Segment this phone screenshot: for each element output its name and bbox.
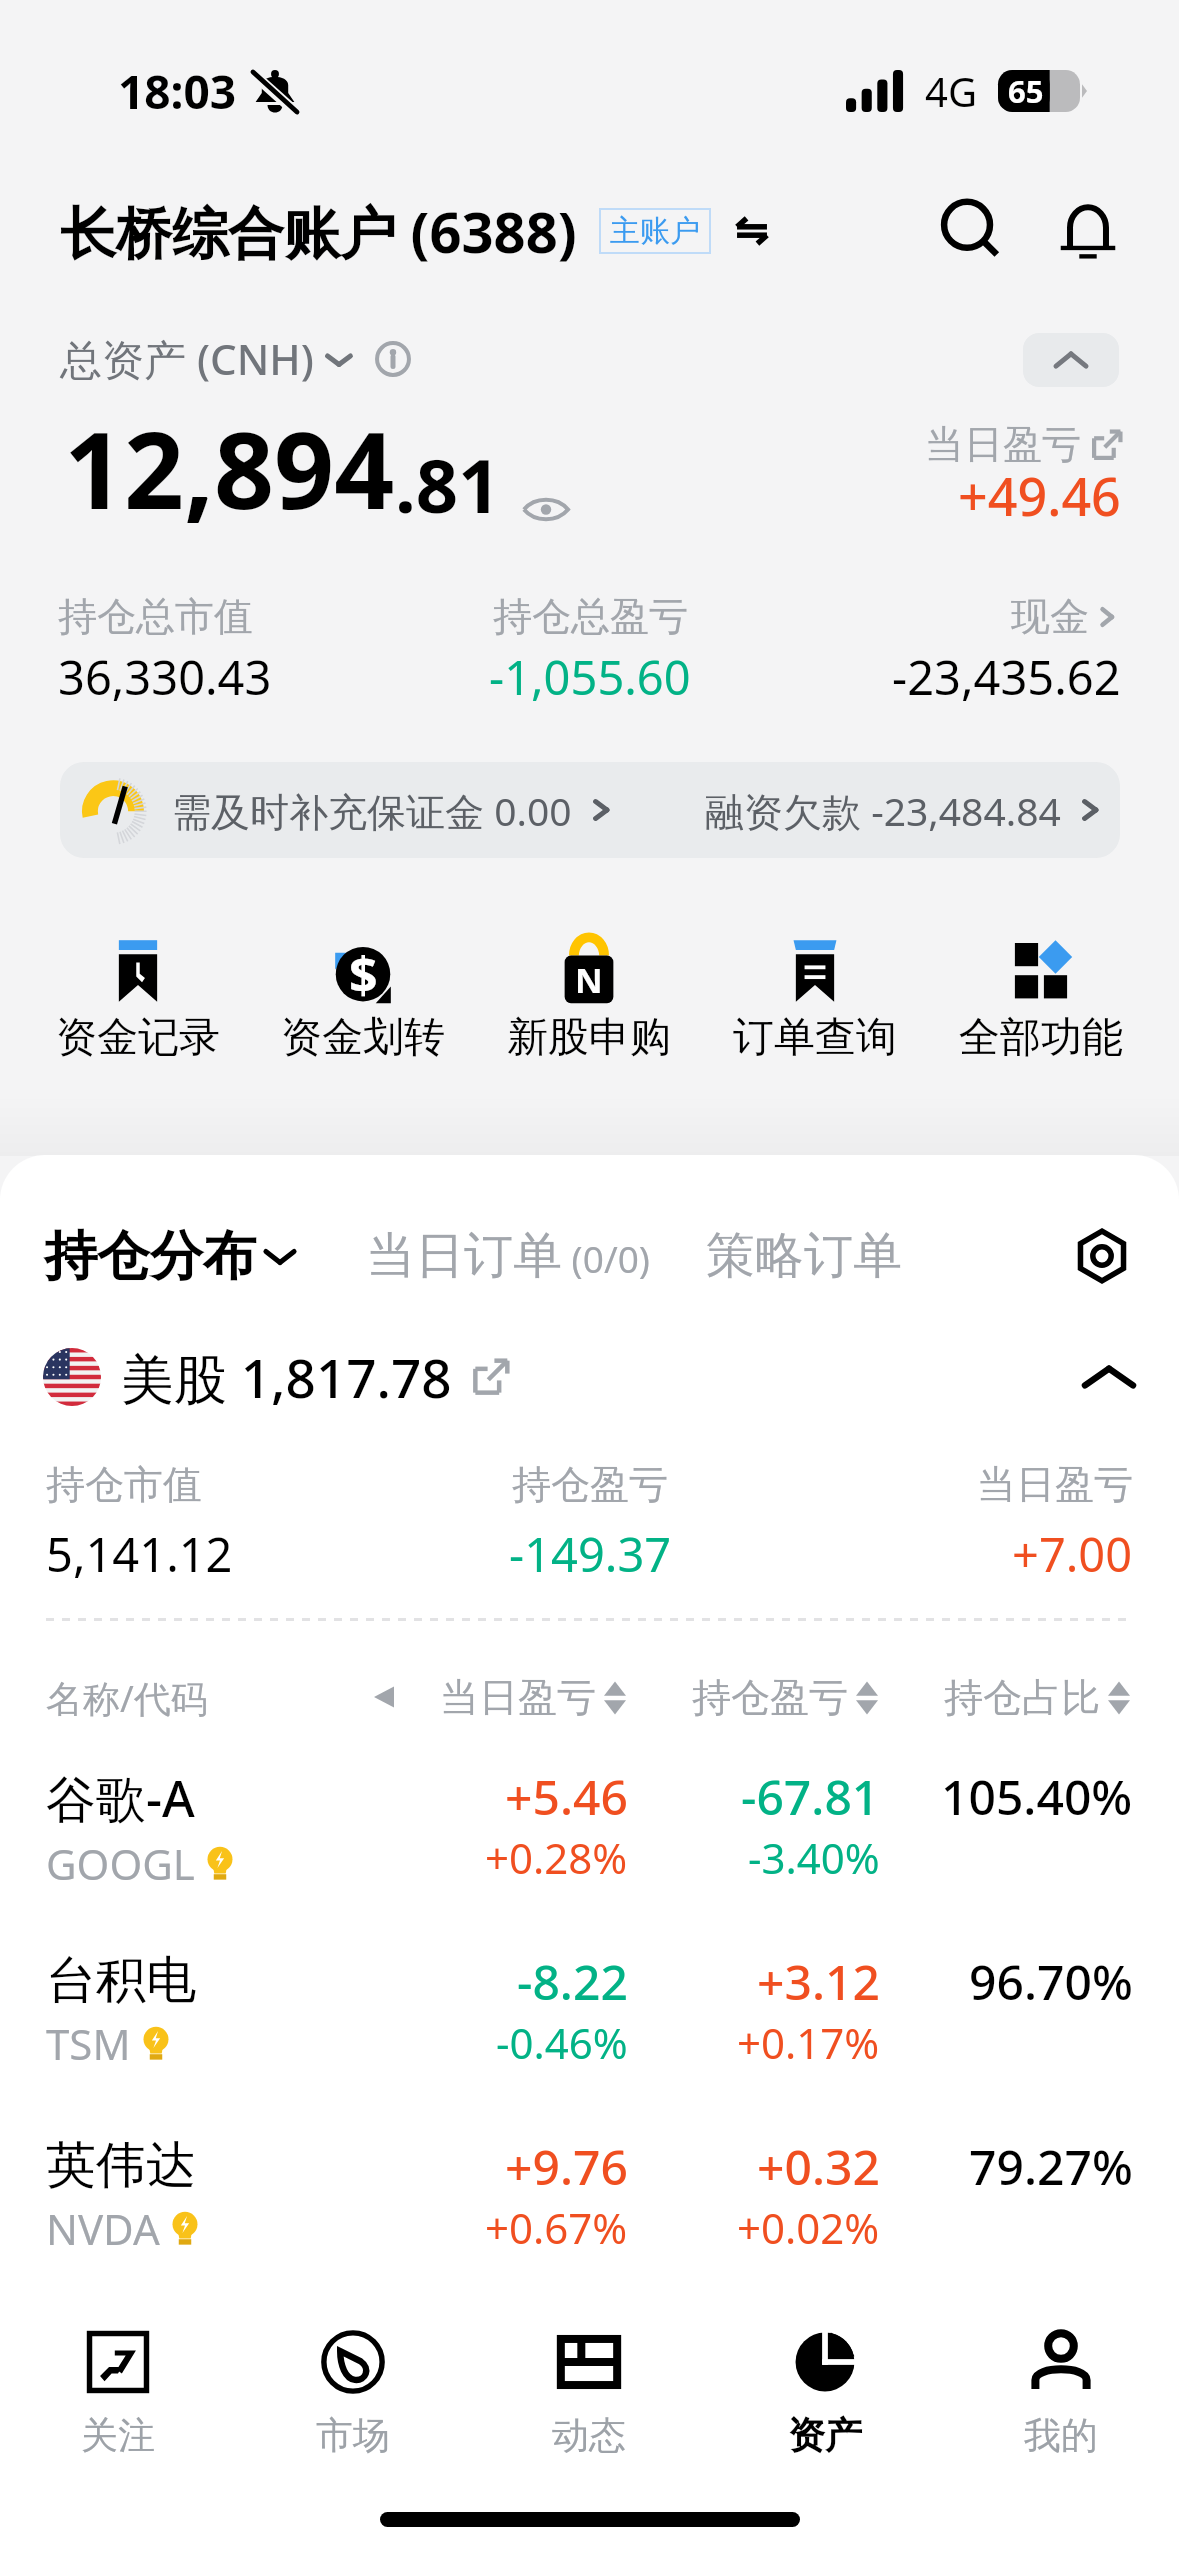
staticText: NVDA bbox=[46, 2200, 160, 2257]
staticText: 持仓总市值 bbox=[58, 592, 253, 641]
button[interactable]: 订单查询 bbox=[702, 936, 928, 1064]
staticText: -149.37 bbox=[509, 1522, 672, 1586]
staticText: -8.22 bbox=[517, 1949, 628, 2014]
staticText: 当日盈亏 bbox=[925, 420, 1081, 469]
button[interactable]: 英伟达 bbox=[0, 2128, 1179, 2298]
staticText: 105.40% bbox=[941, 1764, 1133, 1829]
staticText: -1,055.60 bbox=[489, 645, 691, 709]
staticText: 5,141.12 bbox=[46, 1522, 233, 1586]
staticText: 4G bbox=[925, 64, 977, 118]
staticText: GOOGL bbox=[46, 1835, 195, 1892]
staticText: 持仓市值 bbox=[46, 1460, 202, 1509]
button[interactable]: Info bbox=[374, 340, 412, 378]
staticText: +9.76 bbox=[505, 2134, 628, 2199]
staticText: +49.46 bbox=[958, 460, 1121, 531]
button[interactable]: 当日盈亏 bbox=[440, 1673, 626, 1722]
staticText: 长桥综合账户 (6388) bbox=[60, 193, 577, 269]
staticText: +3.12 bbox=[757, 1949, 880, 2014]
button[interactable]: 策略订单 bbox=[706, 1225, 902, 1287]
staticText: 策略订单 bbox=[706, 1225, 902, 1287]
staticText: -3.40% bbox=[748, 1829, 880, 1886]
staticText: 新股申购 bbox=[507, 1012, 671, 1064]
button[interactable]: 谷歌-A bbox=[0, 1758, 1179, 1928]
button[interactable]: 融资欠款 -23,484.84 bbox=[690, 762, 1120, 858]
staticText: 关注 bbox=[81, 2412, 155, 2459]
button[interactable]: 当日盈亏 bbox=[925, 420, 1121, 469]
staticText: 65 bbox=[1008, 70, 1044, 112]
staticText: 96.70% bbox=[969, 1949, 1133, 2014]
staticText: 12,894 bbox=[64, 397, 395, 540]
button[interactable]: 我的 bbox=[943, 2322, 1179, 2502]
staticText: -0.46% bbox=[496, 2014, 628, 2071]
staticText: 总资产 (CNH) bbox=[60, 330, 314, 387]
staticText: 持仓盈亏 bbox=[512, 1460, 668, 1509]
button[interactable]: 资产 bbox=[707, 2322, 943, 2502]
staticText: 持仓占比 bbox=[944, 1673, 1100, 1722]
staticText: +0.17% bbox=[737, 2014, 880, 2071]
button[interactable]: Settings bbox=[1071, 1225, 1133, 1287]
button[interactable]: N bbox=[476, 936, 702, 1064]
staticText: 当日盈亏 bbox=[977, 1460, 1133, 1509]
button[interactable]: Collapse bbox=[1023, 333, 1119, 387]
staticText: +7.00 bbox=[1012, 1522, 1133, 1586]
staticText: 当日盈亏 bbox=[440, 1673, 596, 1722]
button[interactable]: 台积电 bbox=[0, 1943, 1179, 2113]
staticText: 名称/代码 bbox=[46, 1672, 208, 1722]
button[interactable]: Toggle amount visibility bbox=[523, 496, 569, 522]
staticText: 全部功能 bbox=[959, 1012, 1123, 1064]
button[interactable]: 持仓分布 bbox=[44, 1223, 296, 1290]
button[interactable]: 关注 bbox=[0, 2322, 235, 2502]
staticText: 英伟达 bbox=[46, 2134, 196, 2197]
staticText: +0.67% bbox=[485, 2199, 628, 2256]
staticText: 我的 bbox=[1024, 2412, 1098, 2459]
staticText: -67.81 bbox=[741, 1764, 880, 1829]
button[interactable]: 全部功能 bbox=[928, 936, 1154, 1064]
staticText: 资产 bbox=[788, 2412, 862, 2459]
staticText: -23,435.62 bbox=[892, 645, 1121, 709]
staticText: 美股 1,817.78 bbox=[121, 1341, 452, 1413]
staticText: (0/0) bbox=[562, 1233, 650, 1283]
staticText: 持仓盈亏 bbox=[692, 1673, 848, 1722]
button[interactable]: 需及时补充保证金 0.00 bbox=[60, 762, 690, 858]
staticText: $ bbox=[349, 940, 378, 1008]
button[interactable]: 主账户 bbox=[599, 208, 711, 254]
staticText: 持仓分布 bbox=[44, 1223, 256, 1290]
staticText: +5.46 bbox=[505, 1764, 628, 1829]
staticText: 需及时补充保证金 0.00 bbox=[172, 784, 572, 837]
button[interactable]: Notifications bbox=[1049, 192, 1127, 270]
button[interactable]: $ bbox=[250, 936, 476, 1064]
button[interactable]: Switch account bbox=[727, 206, 777, 256]
staticText: 18:03 bbox=[118, 60, 237, 123]
staticText: .81 bbox=[395, 434, 501, 535]
staticText: 订单查询 bbox=[733, 1012, 897, 1064]
button[interactable]: 市场 bbox=[235, 2322, 471, 2502]
staticText: 资金划转 bbox=[281, 1012, 445, 1064]
staticText: 主账户 bbox=[610, 212, 700, 250]
staticText: 持仓总盈亏 bbox=[493, 592, 688, 641]
staticText: TSM bbox=[46, 2015, 131, 2072]
button[interactable]: 资金记录 bbox=[25, 936, 250, 1064]
staticText: 市场 bbox=[316, 2412, 390, 2459]
staticText: +0.32 bbox=[757, 2134, 880, 2199]
staticText: 当日订单 bbox=[366, 1225, 562, 1287]
button[interactable]: 美股 1,817.78 bbox=[43, 1341, 1133, 1413]
staticText: 79.27% bbox=[969, 2134, 1133, 2199]
staticText: 动态 bbox=[552, 2412, 626, 2459]
staticText: 台积电 bbox=[46, 1949, 196, 2012]
button[interactable]: 当日订单 bbox=[366, 1225, 650, 1287]
staticText: N bbox=[575, 957, 603, 1003]
button[interactable]: 持仓盈亏 bbox=[692, 1673, 878, 1722]
button[interactable]: 持仓占比 bbox=[944, 1673, 1130, 1722]
staticText: +0.28% bbox=[485, 1829, 628, 1886]
staticText: +0.02% bbox=[737, 2199, 880, 2256]
staticText: 现金 bbox=[1011, 592, 1089, 641]
staticText: 融资欠款 -23,484.84 bbox=[705, 784, 1061, 837]
button[interactable]: 动态 bbox=[471, 2322, 707, 2502]
staticText: 资金记录 bbox=[56, 1012, 220, 1064]
staticText: 36,330.43 bbox=[58, 645, 272, 709]
staticText: 谷歌-A bbox=[46, 1764, 195, 1832]
button[interactable]: 现金 bbox=[1011, 592, 1121, 641]
button[interactable]: Search bbox=[933, 192, 1011, 270]
